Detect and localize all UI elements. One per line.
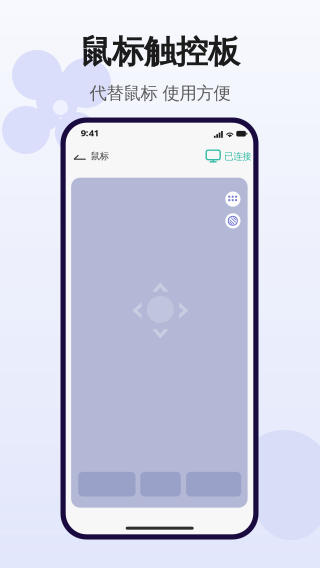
staticText: 鼠标 xyxy=(91,150,109,162)
button[interactable]: Keyboard xyxy=(225,191,240,207)
button[interactable]: Disable trackpad xyxy=(225,213,240,228)
staticText: 代替鼠标 使用方便 xyxy=(89,82,230,104)
staticText: 已连接 xyxy=(224,151,251,162)
button[interactable]: Middle click xyxy=(140,472,181,496)
staticText: 9:41 xyxy=(81,126,99,139)
staticText: 鼠标触控板 xyxy=(80,32,240,71)
button[interactable]: 鼠标 xyxy=(66,149,116,169)
button[interactable]: 已连接 xyxy=(206,149,253,169)
